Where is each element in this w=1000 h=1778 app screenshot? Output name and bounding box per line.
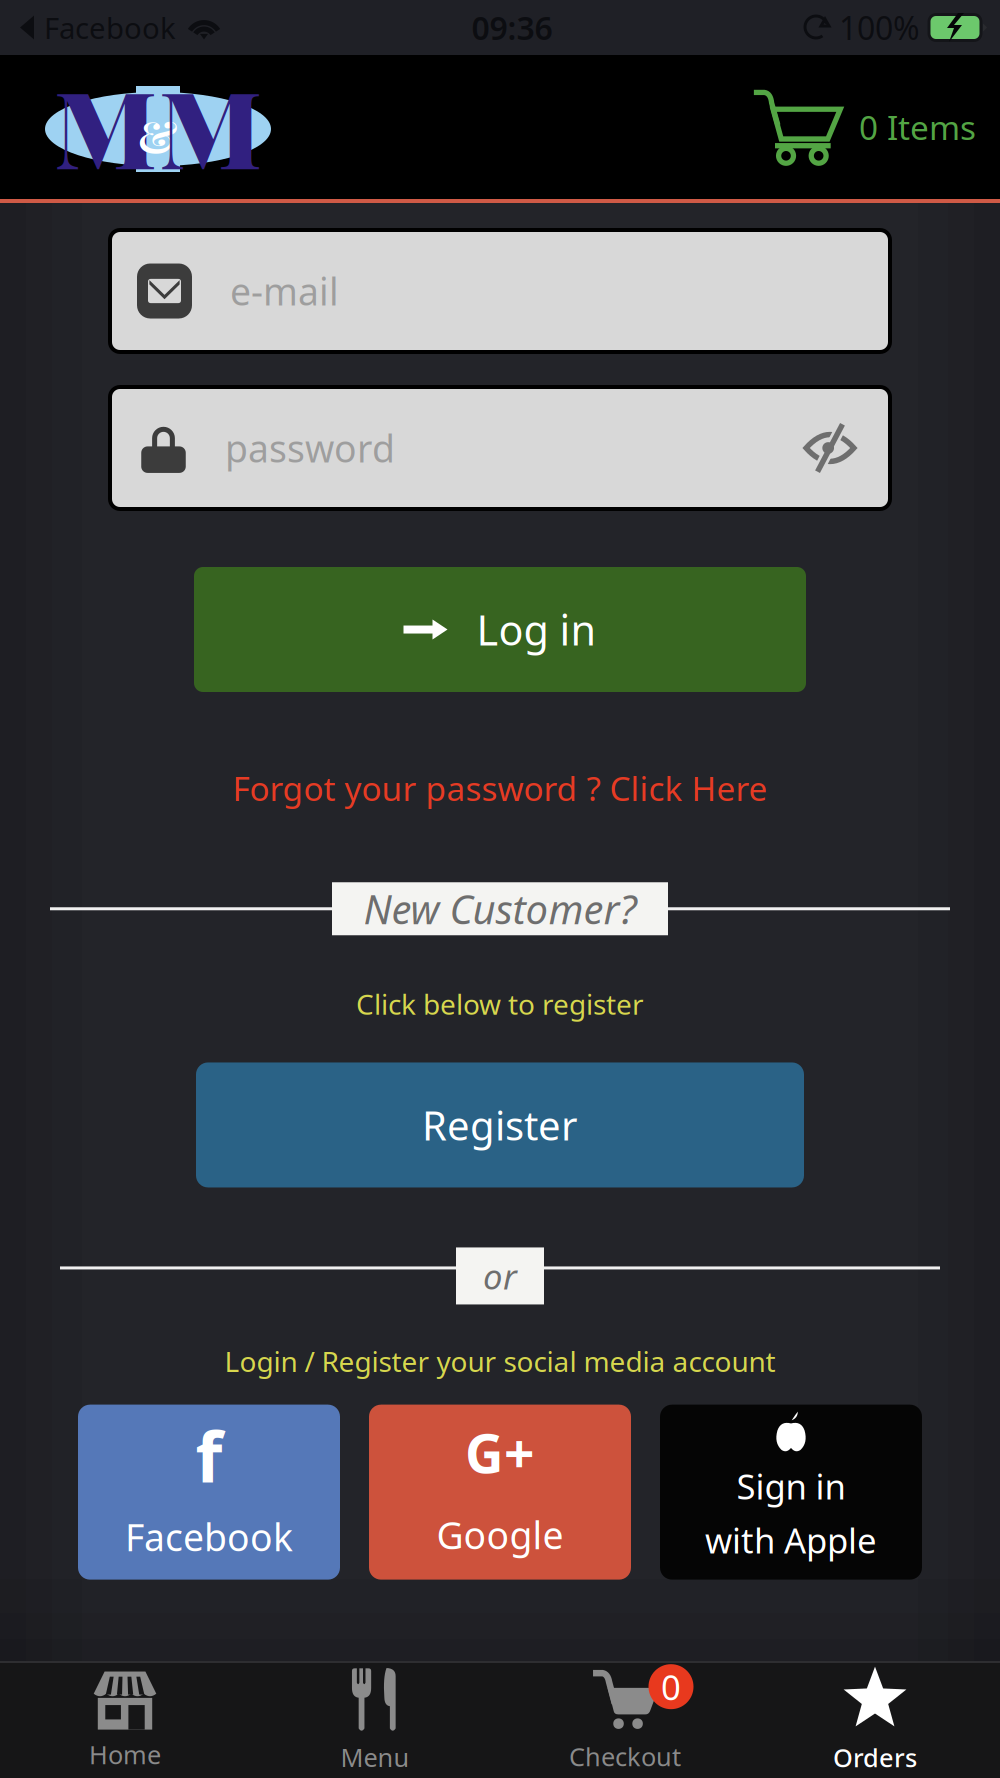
staticText: Log in	[476, 602, 596, 657]
staticText: Register	[422, 1098, 578, 1151]
button[interactable]: Home	[0, 1663, 250, 1778]
staticText: Facebook	[44, 8, 176, 47]
button[interactable]: G+	[369, 1405, 631, 1580]
button[interactable]: 0	[500, 1663, 750, 1778]
staticText: Forgot your password ? Click Here	[232, 766, 767, 810]
button[interactable]: Log in	[194, 567, 806, 692]
button[interactable]: Forgot your password ? Click Here	[232, 760, 767, 816]
staticText: Home	[89, 1738, 161, 1771]
staticText: Orders	[833, 1741, 917, 1774]
staticText: with Apple	[705, 1517, 877, 1563]
button[interactable]: Register	[196, 1062, 804, 1187]
staticText: 09:36	[471, 6, 552, 49]
button[interactable]: f	[78, 1405, 340, 1580]
staticText: Checkout	[569, 1740, 681, 1773]
staticText: f	[195, 1410, 222, 1502]
staticText: e-mail	[230, 266, 339, 316]
button[interactable]: 0 Items	[751, 79, 1000, 175]
staticText: 0 Items	[859, 105, 976, 149]
staticText: New Customer?	[363, 882, 636, 935]
staticText: Login / Register your social media accou…	[224, 1342, 775, 1380]
staticText: G+	[465, 1417, 535, 1488]
button[interactable]: Menu	[250, 1663, 500, 1778]
staticText: Google	[436, 1510, 563, 1560]
staticText: &	[138, 106, 178, 164]
staticText: M	[159, 54, 262, 196]
staticText: 0	[661, 1664, 681, 1710]
button[interactable]: Sign in	[660, 1405, 922, 1580]
staticText: Click below to register	[356, 985, 644, 1022]
staticText: Sign in	[736, 1463, 845, 1509]
staticText: M	[54, 54, 157, 196]
button[interactable]: Orders	[750, 1663, 1000, 1778]
staticText: or	[483, 1253, 517, 1299]
staticText: Menu	[340, 1740, 409, 1774]
staticText: 100%	[839, 6, 920, 49]
staticText: Facebook	[125, 1512, 293, 1562]
staticText: password	[225, 423, 395, 473]
